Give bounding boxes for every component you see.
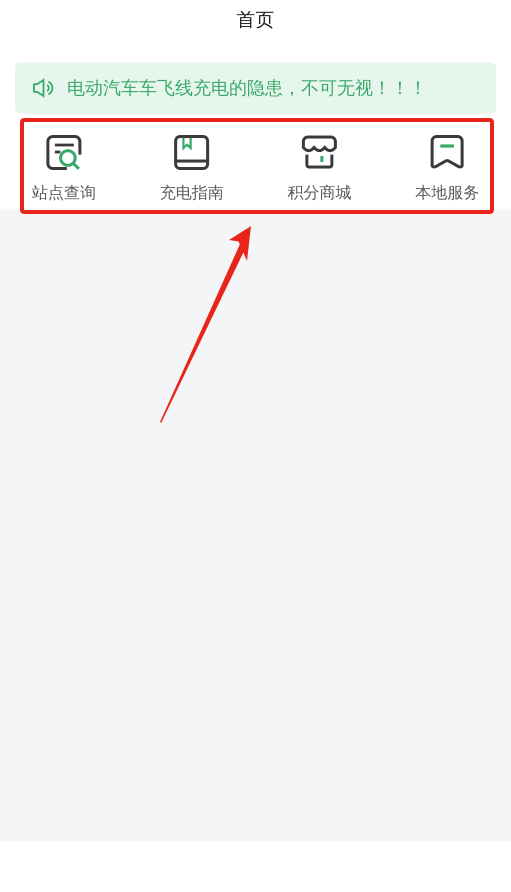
button[interactable]: 积分商城 [255, 132, 383, 203]
button[interactable]: 充电指南 [128, 132, 256, 203]
staticText: 积分商城 [287, 182, 351, 203]
button[interactable]: 本地服务 [383, 132, 511, 203]
staticText: 首页 [236, 8, 274, 31]
staticText: 站点查询 [32, 182, 96, 203]
button[interactable]: 站点查询 [0, 132, 128, 203]
staticText: 本地服务 [415, 182, 479, 203]
staticText: 电动汽车车飞线充电的隐患，不可无视！！！ [67, 77, 427, 99]
staticText: 充电指南 [160, 182, 224, 203]
